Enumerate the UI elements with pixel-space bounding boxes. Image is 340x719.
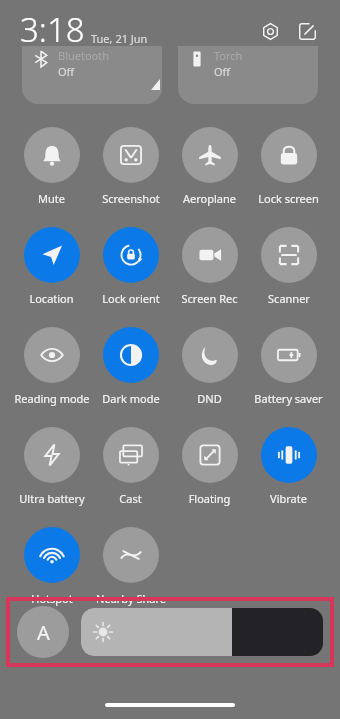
button[interactable]: Bluetooth	[22, 46, 162, 104]
staticText: Aeroplane mode	[170, 191, 249, 206]
button[interactable]: Dark mode	[91, 320, 170, 420]
staticText: Cast	[119, 491, 142, 506]
staticText: DND	[197, 391, 222, 406]
button[interactable]: Nearby Share	[91, 520, 170, 620]
staticText: Vibrate	[270, 491, 307, 506]
button[interactable]: Ultra battery	[12, 420, 91, 520]
staticText: Battery saver	[254, 391, 323, 406]
button[interactable]: Battery saver	[249, 320, 328, 420]
staticText: Bluetooth	[58, 48, 110, 63]
staticText: Hotspot	[31, 591, 73, 606]
button[interactable]: Reading mode	[12, 320, 91, 420]
staticText: Screenshot	[102, 191, 160, 206]
button[interactable]: Screen Rec	[170, 220, 249, 320]
staticText: Dark mode	[102, 391, 160, 406]
button[interactable]: Vibrate	[249, 420, 328, 520]
staticText: Scanner	[268, 291, 310, 306]
button[interactable]: Torch	[178, 46, 318, 104]
button[interactable]: Mute	[12, 120, 91, 220]
button[interactable]: Scanner	[249, 220, 328, 320]
button[interactable]: DND	[170, 320, 249, 420]
staticText: Lock orient	[102, 291, 160, 306]
button[interactable]	[81, 608, 323, 656]
staticText: Screen Rec	[181, 291, 238, 306]
staticText: Mute	[38, 191, 65, 206]
staticText: Tue, 21 Jun	[91, 31, 148, 46]
staticText: Lock screen	[258, 191, 319, 206]
staticText: 3:18	[20, 7, 85, 52]
button[interactable]: Floating window	[170, 420, 249, 520]
staticText: Nearby Share	[96, 591, 166, 606]
button[interactable]: Location	[12, 220, 91, 320]
button[interactable]: Aeroplane mode	[170, 120, 249, 220]
button[interactable]: Settings	[255, 16, 285, 46]
button[interactable]: Lock screen	[249, 120, 328, 220]
staticText: Off	[214, 64, 231, 79]
staticText: Reading mode	[14, 391, 90, 406]
staticText: A	[37, 619, 50, 646]
button[interactable]: Screenshot	[91, 120, 170, 220]
button[interactable]: Hotspot	[12, 520, 91, 620]
staticText: Floating window	[170, 491, 249, 506]
staticText: Ultra battery	[19, 491, 85, 506]
staticText: Location	[29, 291, 74, 306]
button[interactable]: A	[17, 606, 69, 658]
staticText: Off	[58, 64, 75, 79]
staticText: Torch	[214, 48, 243, 63]
button[interactable]: Cast	[91, 420, 170, 520]
button[interactable]: Lock orient	[91, 220, 170, 320]
button[interactable]: Edit	[292, 16, 322, 46]
